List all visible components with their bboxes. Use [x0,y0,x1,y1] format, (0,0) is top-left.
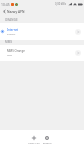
button[interactable]: MMS Orange [0,45,84,61]
staticText: Internet [7,28,19,32]
button[interactable]: Reset settings [37,130,57,144]
staticText: Nazwy APN [7,10,25,14]
button[interactable]: Back [0,8,7,15]
staticText: internet [7,33,16,36]
staticText: Nowy APN [24,141,44,144]
button[interactable]: Add new APN [24,130,44,144]
staticText: Resetuj ustawienia [37,141,57,144]
button[interactable]: Edit APN [72,23,84,40]
staticText: 10:45 [1,2,10,7]
staticText: MMS Orange [7,49,25,53]
staticText: mms [7,54,13,57]
staticText: MMS [5,40,13,44]
staticText: 0,00 kB/s [55,2,67,6]
button[interactable]: Internet [0,23,84,40]
staticText: ORANGE [5,18,18,22]
button[interactable]: Edit APN [72,45,84,61]
